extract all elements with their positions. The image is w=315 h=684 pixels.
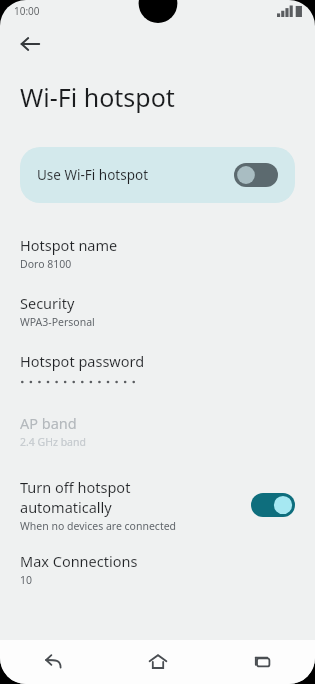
staticText: Doro 8100 bbox=[20, 257, 72, 271]
button[interactable]: Security bbox=[0, 293, 315, 329]
staticText: automatically bbox=[20, 497, 112, 517]
button[interactable]: Back bbox=[0, 640, 105, 684]
button[interactable]: Hotspot password bbox=[0, 351, 315, 387]
staticText: When no devices are connected bbox=[20, 519, 177, 533]
staticText: AP band bbox=[20, 413, 77, 433]
staticText: Wi-Fi hotspot bbox=[20, 80, 175, 114]
button[interactable]: Turn off hotspot bbox=[0, 477, 315, 533]
button[interactable]: Recent apps bbox=[210, 640, 315, 684]
button[interactable]: Hotspot name bbox=[0, 235, 315, 271]
staticText: 10:00 bbox=[14, 4, 40, 18]
staticText: WPA3-Personal bbox=[20, 315, 95, 329]
staticText: Use Wi-Fi hotspot bbox=[37, 166, 234, 184]
staticText: Hotspot password bbox=[20, 351, 145, 371]
button[interactable]: Back bbox=[8, 22, 52, 66]
staticText: 2.4 GHz band bbox=[20, 435, 86, 449]
staticText: Turn off hotspot bbox=[20, 477, 131, 497]
staticText: Security bbox=[20, 293, 75, 313]
button[interactable]: Use Wi-Fi hotspot bbox=[20, 147, 295, 203]
staticText: Max Connections bbox=[20, 551, 138, 571]
staticText: 10 bbox=[20, 573, 33, 587]
button[interactable]: Home bbox=[105, 640, 210, 684]
staticText: Hotspot name bbox=[20, 235, 118, 255]
